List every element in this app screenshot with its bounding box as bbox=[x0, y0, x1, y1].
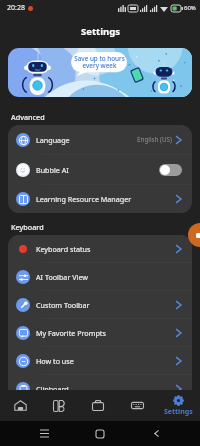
staticText: Settings bbox=[81, 25, 120, 38]
staticText: Settings bbox=[164, 407, 193, 417]
button[interactable]: Learning Resource Manager bbox=[8, 185, 192, 213]
staticText: Clipboard bbox=[36, 384, 69, 394]
button[interactable]: Translate bbox=[42, 390, 76, 421]
staticText: Language bbox=[36, 135, 70, 145]
button[interactable]: How to use bbox=[8, 347, 192, 374]
staticText: 60% bbox=[184, 4, 196, 12]
button[interactable]: Recents bbox=[16, 421, 72, 446]
button[interactable]: Bubble AI bbox=[8, 155, 192, 184]
staticText: English (US) bbox=[137, 135, 172, 144]
button[interactable]: Keyboard status bbox=[8, 235, 192, 262]
staticText: AI Toolbar View bbox=[36, 272, 88, 282]
staticText: My Favorite Prompts bbox=[36, 328, 106, 338]
staticText: 20:28 bbox=[7, 3, 25, 13]
staticText: Advanced bbox=[11, 112, 45, 122]
staticText: Learning Resource Manager bbox=[36, 194, 132, 204]
staticText: Bubble AI bbox=[36, 165, 69, 175]
staticText: Save up to hours every week bbox=[74, 54, 125, 70]
button[interactable]: Home bbox=[3, 390, 37, 421]
staticText: Custom Toolbar bbox=[36, 300, 90, 310]
button[interactable]: Custom Toolbar bbox=[8, 291, 192, 318]
button[interactable]: Save up to hours every week bbox=[8, 48, 192, 97]
staticText: Keyboard status bbox=[36, 244, 91, 254]
button[interactable]: My Favorite Prompts bbox=[8, 319, 192, 346]
button[interactable]: Settings bbox=[159, 390, 197, 421]
button[interactable]: Clipboard bbox=[8, 375, 192, 402]
button[interactable]: Language bbox=[8, 125, 192, 154]
button[interactable]: Back bbox=[128, 421, 184, 446]
button[interactable]: AI Toolbar View bbox=[8, 263, 192, 290]
button[interactable]: AI Tools bbox=[81, 390, 115, 421]
staticText: Keyboard bbox=[11, 222, 44, 232]
button[interactable]: Home bbox=[72, 421, 128, 446]
staticText: How to use bbox=[36, 356, 74, 366]
button[interactable]: Screen recorder bbox=[188, 223, 200, 247]
button[interactable]: Keyboard bbox=[120, 390, 154, 421]
